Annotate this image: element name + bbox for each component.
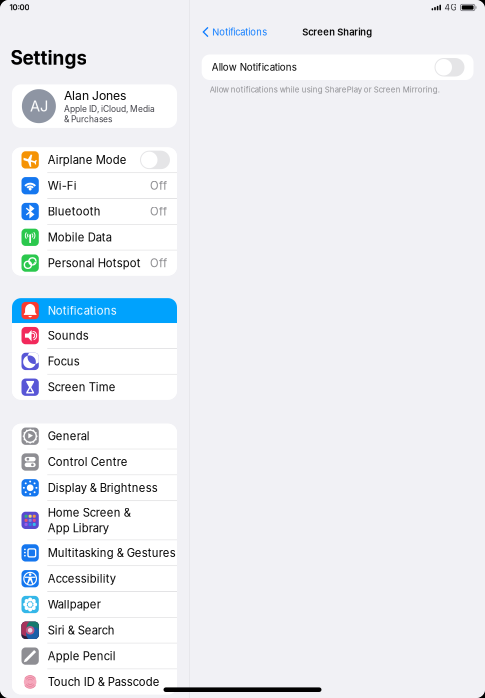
staticText: General xyxy=(48,429,90,443)
staticText: Off xyxy=(150,256,167,270)
button[interactable]: Mobile Data xyxy=(12,225,177,250)
button[interactable]: Screen Time xyxy=(12,375,177,400)
button[interactable]: Allow Notifications xyxy=(202,54,473,80)
button[interactable]: AJ xyxy=(12,84,177,128)
staticText: Focus xyxy=(48,355,80,368)
button[interactable]: Apple Pencil xyxy=(12,644,177,669)
button[interactable]: Control Centre xyxy=(12,449,177,474)
staticText: Wallpaper xyxy=(48,598,101,611)
staticText: Screen Time xyxy=(48,380,116,394)
staticText: Display & Brightness xyxy=(48,481,158,495)
button[interactable]: Airplane Mode xyxy=(12,147,177,172)
button[interactable]: Focus xyxy=(12,349,177,374)
staticText: Screen Sharing xyxy=(302,26,372,38)
staticText: & Purchases xyxy=(64,114,112,124)
staticText: Mobile Data xyxy=(48,230,112,244)
button[interactable]: Home Screen & xyxy=(12,501,177,540)
staticText: Off xyxy=(150,179,167,192)
staticText: 4G xyxy=(444,2,456,13)
staticText: Touch ID & Passcode xyxy=(48,675,160,689)
button[interactable]: Notifications xyxy=(12,298,177,323)
button[interactable]: Notifications xyxy=(190,21,273,43)
staticText: Notifications xyxy=(48,304,117,317)
button[interactable]: Accessibility xyxy=(12,566,177,591)
button[interactable]: Multitasking & Gestures xyxy=(12,540,177,565)
button[interactable]: Siri & Search xyxy=(12,618,177,643)
button[interactable]: Personal Hotspot xyxy=(12,251,177,276)
button[interactable]: Bluetooth xyxy=(12,199,177,224)
staticText: App Library xyxy=(48,521,109,535)
staticText: Notifications xyxy=(212,26,267,38)
button[interactable]: Sounds xyxy=(12,323,177,348)
staticText: Off xyxy=(150,205,167,218)
staticText: Personal Hotspot xyxy=(48,256,141,270)
staticText: Apple Pencil xyxy=(48,649,116,663)
staticText: Home Screen & xyxy=(48,506,131,519)
button[interactable]: Wi-Fi xyxy=(12,173,177,198)
staticText: Allow Notifications xyxy=(212,61,297,73)
staticText: Bluetooth xyxy=(48,205,101,218)
button[interactable]: Touch ID & Passcode xyxy=(12,669,177,694)
staticText: Settings xyxy=(10,46,87,69)
staticText: Siri & Search xyxy=(48,623,115,637)
staticText: Alan Jones xyxy=(64,88,126,103)
staticText: Multitasking & Gestures xyxy=(48,546,176,560)
staticText: Wi-Fi xyxy=(48,179,77,192)
button[interactable]: Display & Brightness xyxy=(12,475,177,500)
staticText: Sounds xyxy=(48,329,89,342)
staticText: Accessibility xyxy=(48,572,116,585)
button[interactable]: General xyxy=(12,424,177,449)
staticText: Airplane Mode xyxy=(48,153,127,167)
button[interactable]: Wallpaper xyxy=(12,592,177,617)
staticText: Control Centre xyxy=(48,455,128,469)
staticText: AJ xyxy=(30,97,48,115)
staticText: Allow notifications while using SharePla… xyxy=(210,85,440,94)
staticText: 10:00 xyxy=(9,3,29,12)
staticText: Apple ID, iCloud, Media xyxy=(64,104,155,114)
